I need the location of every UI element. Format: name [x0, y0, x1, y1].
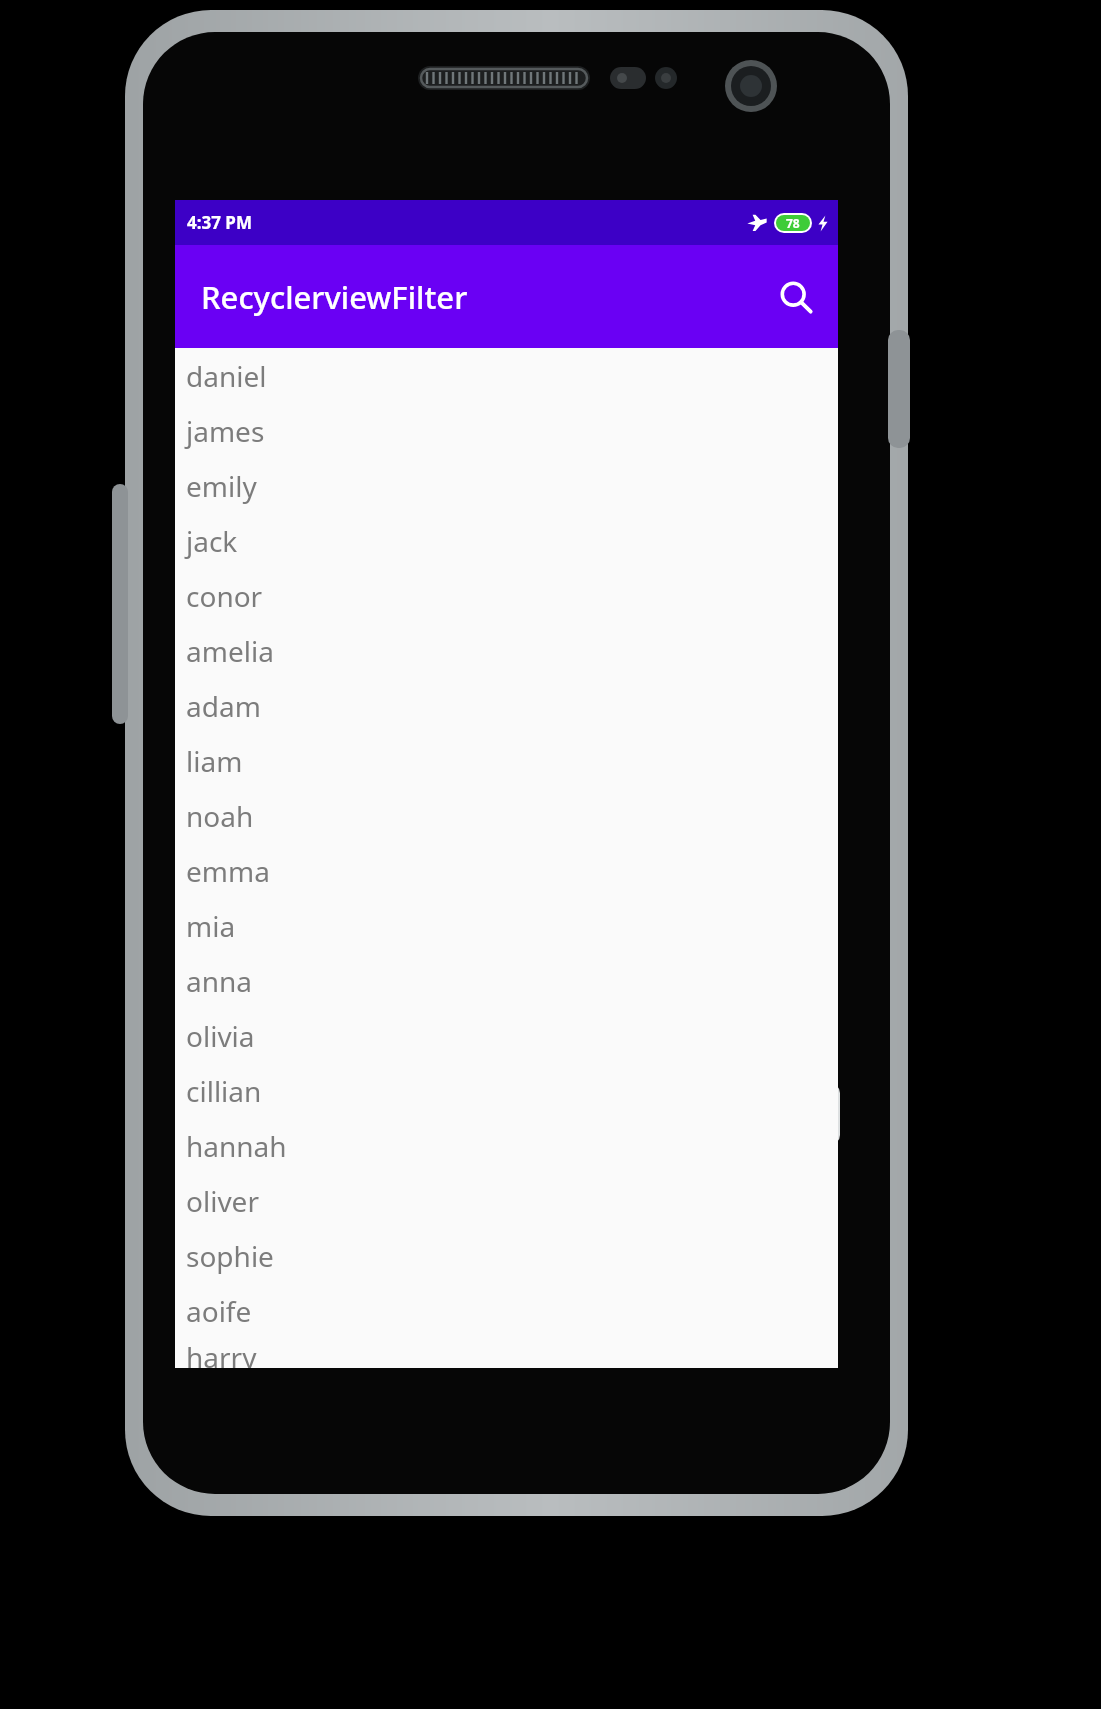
staticText: daniel [186, 357, 267, 395]
staticText: olivia [186, 1017, 255, 1055]
staticText: RecyclerviewFilter [201, 276, 468, 318]
button[interactable]: conor [175, 568, 838, 623]
staticText: noah [186, 797, 254, 835]
staticText: 4:37 PM [187, 211, 252, 234]
button[interactable]: adam [175, 678, 838, 733]
staticText: sophie [186, 1237, 274, 1275]
staticText: emma [186, 852, 270, 890]
button[interactable]: sophie [175, 1228, 838, 1283]
staticText: 78 [786, 215, 800, 231]
staticText: harry [186, 1338, 257, 1368]
button[interactable]: aoife [175, 1283, 838, 1338]
button[interactable]: oliver [175, 1173, 838, 1228]
button[interactable]: emily [175, 458, 838, 513]
button[interactable]: Search [768, 269, 824, 325]
button[interactable]: cillian [175, 1063, 838, 1118]
staticText: mia [186, 907, 236, 945]
staticText: hannah [186, 1127, 287, 1165]
staticText: conor [186, 577, 263, 615]
button[interactable]: harry [175, 1338, 838, 1368]
staticText: amelia [186, 632, 274, 670]
staticText: cillian [186, 1072, 262, 1110]
button[interactable]: anna [175, 953, 838, 1008]
button[interactable]: hannah [175, 1118, 838, 1173]
button[interactable]: noah [175, 788, 838, 843]
staticText: james [186, 412, 265, 450]
button[interactable]: jack [175, 513, 838, 568]
staticText: jack [186, 522, 238, 560]
button[interactable]: olivia [175, 1008, 838, 1063]
staticText: aoife [186, 1292, 252, 1330]
staticText: emily [186, 467, 257, 505]
button[interactable]: liam [175, 733, 838, 788]
button[interactable]: mia [175, 898, 838, 953]
staticText: oliver [186, 1182, 259, 1220]
button[interactable]: amelia [175, 623, 838, 678]
staticText: anna [186, 962, 253, 1000]
staticText: adam [186, 687, 261, 725]
button[interactable]: james [175, 403, 838, 458]
button[interactable]: daniel [175, 348, 838, 403]
staticText: liam [186, 742, 243, 780]
button[interactable]: emma [175, 843, 838, 898]
